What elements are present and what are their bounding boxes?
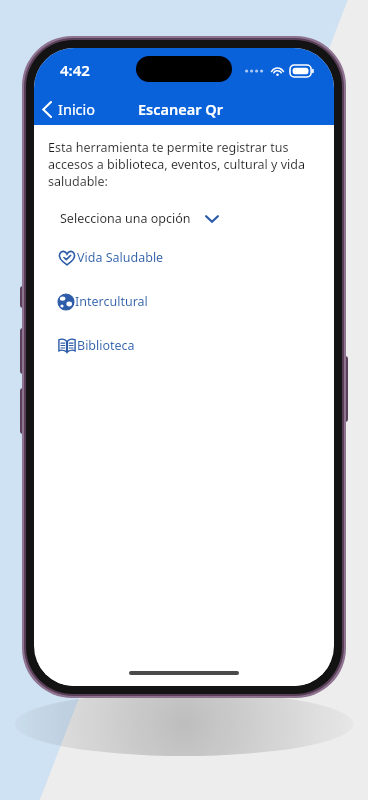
button[interactable]: Biblioteca	[56, 335, 137, 356]
other: Vida Saludable	[58, 250, 76, 266]
other: Biblioteca	[58, 338, 76, 353]
button[interactable]: Vida Saludable	[56, 247, 166, 268]
staticText: Vida Saludable	[77, 249, 164, 266]
button[interactable]: Inicio	[34, 95, 106, 123]
staticText: Inicio	[58, 99, 96, 119]
other: Intercultural	[58, 294, 74, 310]
staticText: 4:42	[60, 60, 90, 80]
staticText: Biblioteca	[77, 337, 135, 354]
button[interactable]: Selecciona una opción	[58, 206, 221, 231]
staticText: Selecciona una opción	[60, 210, 191, 227]
staticText: Esta herramienta te permite registrar tu…	[48, 139, 320, 190]
staticText: Intercultural	[75, 293, 148, 310]
button[interactable]: Intercultural	[56, 291, 150, 312]
staticText: Escanear Qr	[138, 99, 223, 119]
